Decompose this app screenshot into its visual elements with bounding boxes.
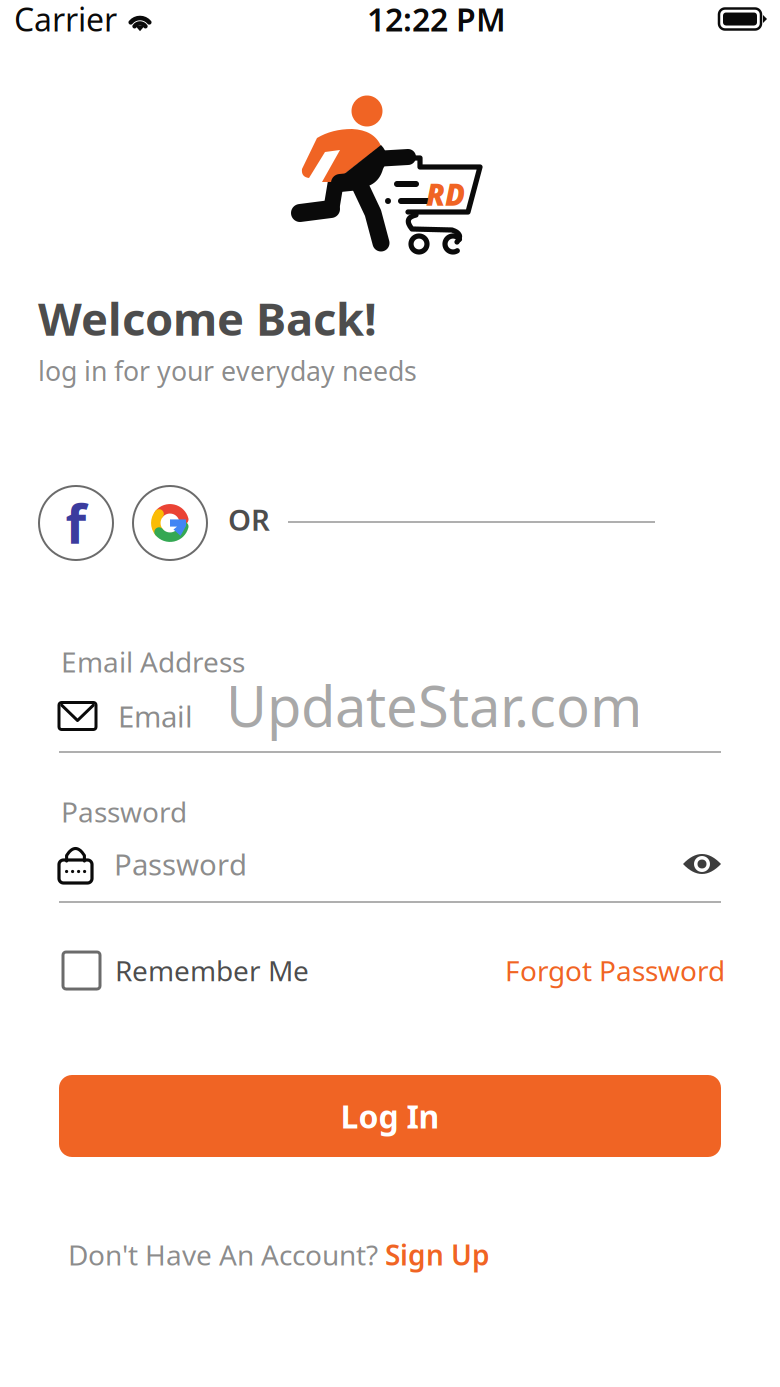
staticText: Sign Up (385, 1236, 490, 1273)
button[interactable]: Forgot Password (505, 952, 725, 989)
button[interactable]: Sign in with Google (133, 486, 207, 560)
button[interactable]: Show password (683, 853, 721, 875)
staticText: Welcome Back! (38, 288, 377, 348)
staticText: f (65, 488, 86, 558)
staticText: Email Address (61, 643, 245, 680)
staticText: OR (228, 500, 270, 539)
staticText: Password (114, 844, 247, 883)
staticText: 12:22 PM (367, 0, 506, 40)
button[interactable]: Sign in with Facebook (39, 486, 113, 560)
staticText: UpdateStar.com (226, 668, 642, 742)
staticText: Remember Me (115, 952, 309, 989)
staticText: Don't Have An Account? (68, 1236, 385, 1273)
staticText: Password (61, 793, 187, 830)
button[interactable]: Sign Up (385, 1236, 490, 1273)
button[interactable]: Remember Me (63, 952, 309, 989)
staticText: Email (118, 696, 193, 735)
staticText: RD (426, 175, 465, 214)
staticText: Forgot Password (505, 952, 725, 989)
button[interactable]: Log In (59, 1075, 721, 1157)
staticText: Log In (340, 1095, 439, 1137)
staticText: log in for your everyday needs (38, 353, 417, 388)
staticText: Carrier (14, 0, 117, 40)
